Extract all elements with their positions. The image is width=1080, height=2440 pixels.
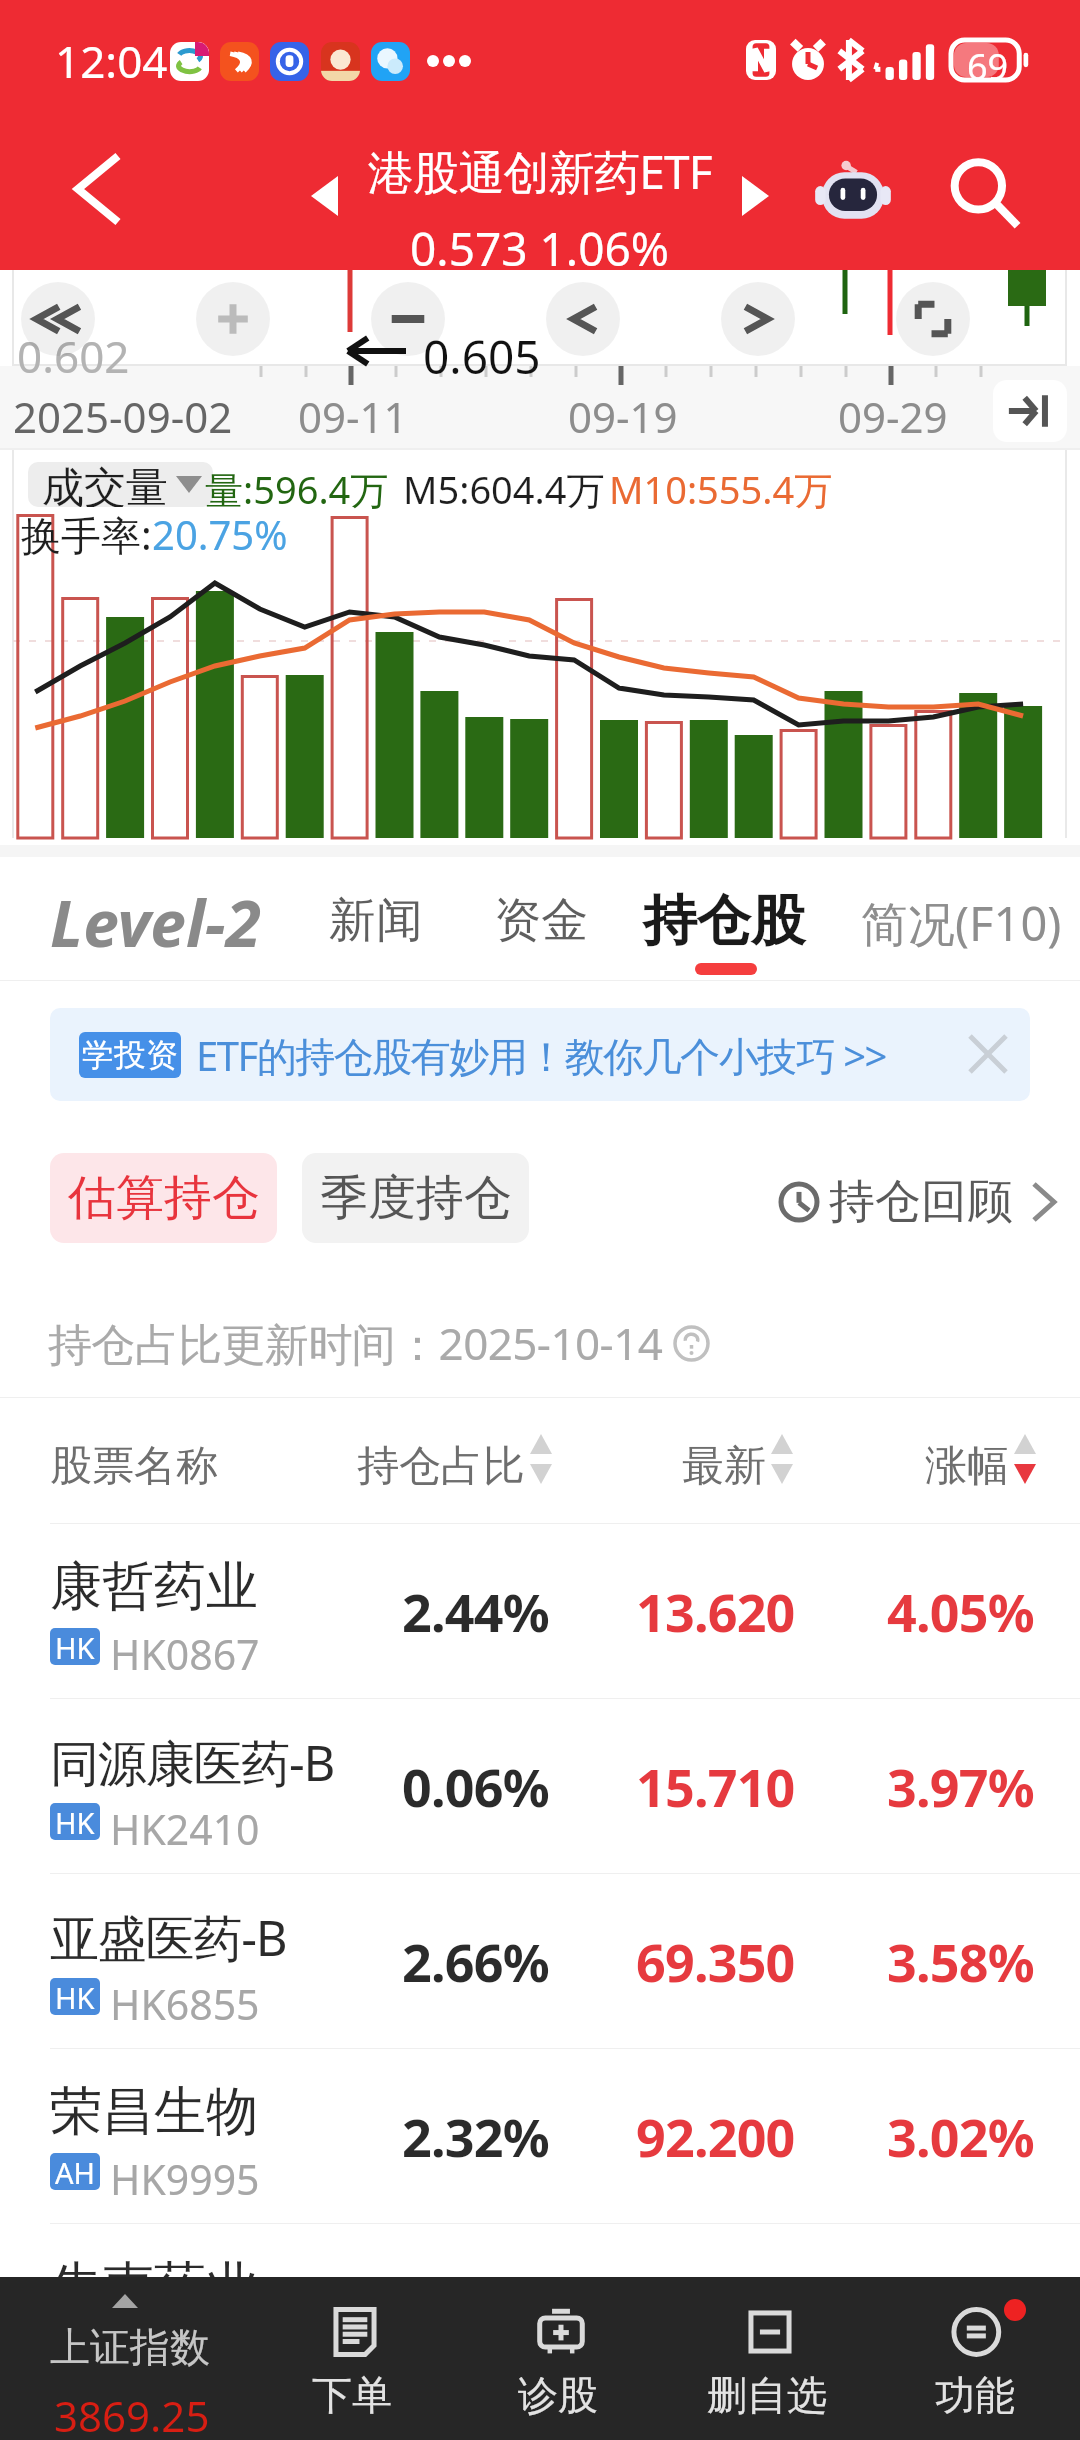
staticText: 学投资: [82, 1035, 178, 1075]
button[interactable]: 持仓占比: [357, 1434, 552, 1487]
staticText: 11.300: [636, 2276, 795, 2347]
staticText: HK: [55, 1803, 95, 1840]
staticText: 先声药业: [50, 2254, 258, 2320]
staticText: HK: [55, 1978, 95, 2015]
staticText: HK0867: [110, 1626, 260, 1682]
staticText: 15.710: [636, 1751, 795, 1822]
staticText: 0.06%: [402, 1751, 549, 1822]
staticText: 持仓回顾: [829, 1173, 1013, 1231]
button[interactable]: fullscreen: [896, 282, 970, 356]
button[interactable]: 同源康医药-B: [0, 1699, 1080, 1874]
staticText: 3.02%: [887, 2101, 1034, 2172]
staticText: 4.05%: [887, 1576, 1034, 1647]
staticText: 康哲药业: [50, 1554, 258, 1620]
staticText: 09-29: [838, 388, 948, 445]
button[interactable]: 功能: [880, 2277, 1070, 2440]
button[interactable]: 季度持仓: [302, 1153, 529, 1243]
staticText: 持仓股: [643, 887, 805, 955]
staticText: M5:604.4万: [403, 463, 605, 515]
staticText: 换手率:: [21, 507, 152, 562]
staticText: 功能: [935, 2370, 1015, 2420]
button[interactable]: zoom in: [196, 282, 270, 356]
staticText: HK2096: [110, 2326, 260, 2382]
staticText: 持仓占比更新时间：2025-10-14: [48, 1313, 663, 1373]
button[interactable]: Level-2: [50, 879, 262, 966]
button[interactable]: 简况(F10): [861, 891, 1062, 955]
staticText: HK9995: [110, 2151, 260, 2207]
button[interactable]: 上证指数: [0, 2277, 250, 2440]
button[interactable]: 荣昌生物: [0, 2049, 1080, 2224]
staticText: 量:596.4万: [205, 463, 389, 515]
staticText: 3.97%: [887, 1751, 1034, 1822]
button[interactable]: 先声药业: [0, 2224, 1080, 2399]
staticText: ETF的持仓股有妙用！教你几个小技巧 >>: [196, 1028, 886, 1083]
staticText: 2.66%: [402, 1926, 549, 1997]
staticText: 持仓占比: [357, 1440, 525, 1493]
staticText: 69.350: [636, 1926, 795, 1997]
button[interactable]: 持仓股: [643, 887, 805, 955]
button[interactable]: 下单: [257, 2277, 447, 2440]
staticText: 亚盛医药-B: [50, 1904, 287, 1971]
button[interactable]: 删自选: [672, 2277, 862, 2440]
staticText: HK2410: [110, 1801, 260, 1857]
staticText: 2.54%: [887, 2276, 1034, 2347]
staticText: 12:04: [55, 31, 168, 91]
button[interactable]: 新闻: [329, 891, 423, 950]
button[interactable]: 资金: [494, 891, 588, 950]
staticText: 最新: [682, 1440, 766, 1493]
button[interactable]: zoom out step: [371, 282, 445, 356]
button[interactable]: zoom out: [21, 282, 95, 356]
button[interactable]: Search: [930, 148, 1040, 240]
staticText: 2.44%: [402, 1576, 549, 1647]
staticText: 季度持仓: [320, 1168, 512, 1228]
button[interactable]: next: [721, 282, 795, 356]
button[interactable]: 成交量: [28, 462, 213, 507]
button[interactable]: 涨幅: [925, 1434, 1036, 1487]
staticText: 0.605: [423, 325, 541, 388]
staticText: 0.602: [17, 326, 130, 386]
staticText: 港股通创新药ETF: [368, 140, 712, 203]
staticText: 09-19: [568, 388, 678, 445]
staticText: 股票名称: [50, 1440, 218, 1493]
staticText: 69: [967, 42, 1009, 82]
button[interactable]: Go to latest: [993, 380, 1067, 442]
staticText: 新闻: [329, 891, 423, 950]
staticText: M10:555.4万: [609, 463, 833, 515]
button[interactable]: 持仓回顾: [778, 1173, 1055, 1231]
button[interactable]: previous: [546, 282, 620, 356]
staticText: 资金: [494, 891, 588, 950]
staticText: 0.573 1.06%: [410, 217, 670, 280]
staticText: HK: [55, 1628, 95, 1665]
staticText: 成交量: [42, 462, 168, 507]
staticText: 20.75%: [152, 507, 288, 561]
button[interactable]: 学投资: [50, 1008, 1030, 1101]
staticText: 简况(F10): [861, 891, 1062, 955]
staticText: 13.620: [636, 1576, 795, 1647]
staticText: 下单: [312, 2370, 392, 2420]
staticText: 09-11: [298, 388, 408, 445]
button[interactable]: 康哲药业: [0, 1524, 1080, 1699]
staticText: 3.58%: [887, 1926, 1034, 1997]
staticText: AH: [55, 2153, 96, 2190]
staticText: 荣昌生物: [50, 2079, 258, 2145]
staticText: 同源康医药-B: [50, 1729, 335, 1796]
button[interactable]: 最新: [682, 1434, 793, 1487]
button[interactable]: 诊股: [463, 2277, 653, 2440]
staticText: 2.32%: [402, 2101, 549, 2172]
staticText: 3869.25: [54, 2387, 210, 2440]
staticText: HK: [55, 2328, 95, 2365]
staticText: 删自选: [707, 2370, 827, 2420]
button[interactable]: AI assistant: [805, 145, 900, 240]
staticText: 2025-09-02: [13, 388, 233, 445]
button[interactable]: 估算持仓: [50, 1153, 277, 1243]
staticText: 上证指数: [50, 2322, 210, 2372]
button[interactable]: 亚盛医药-B: [0, 1874, 1080, 2049]
staticText: 92.200: [636, 2101, 795, 2172]
staticText: HK6855: [110, 1976, 260, 2032]
staticText: Level-2: [50, 879, 262, 966]
staticText: 诊股: [518, 2370, 598, 2420]
button[interactable]: Back: [58, 149, 138, 229]
staticText: 估算持仓: [68, 1168, 260, 1228]
button[interactable]: Close: [950, 1016, 1026, 1092]
staticText: 1.90%: [402, 2276, 549, 2347]
